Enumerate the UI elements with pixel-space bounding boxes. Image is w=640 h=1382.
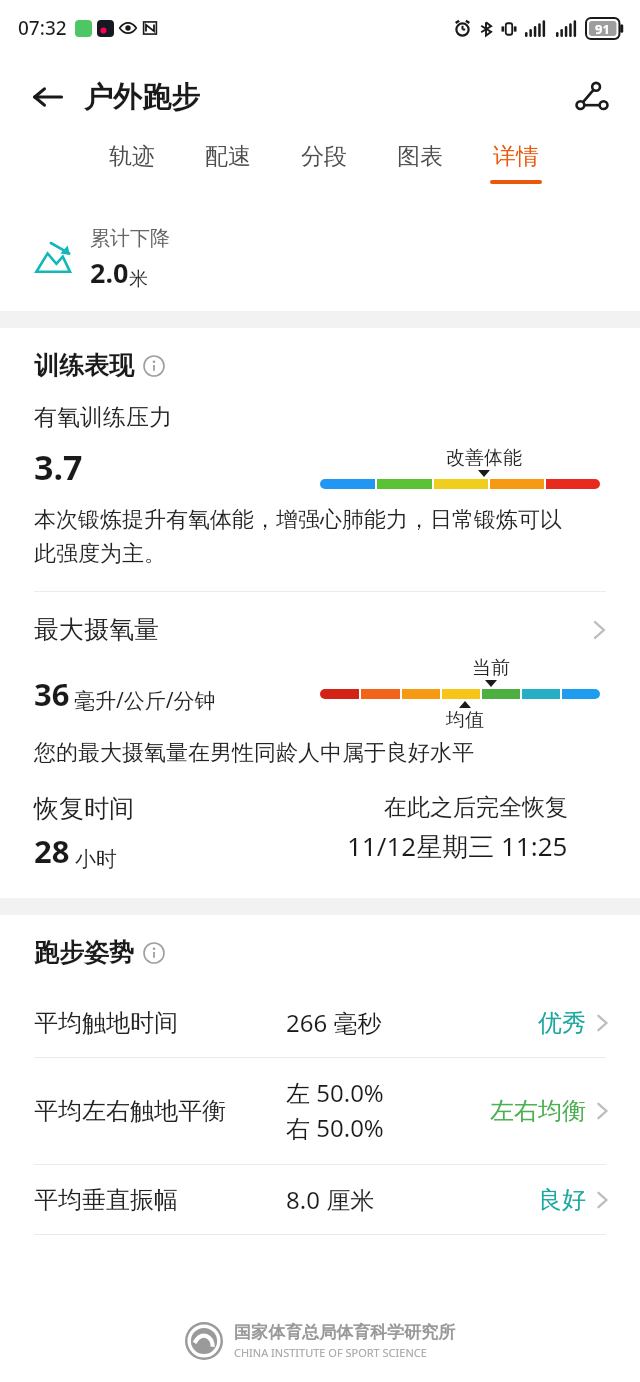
staticText: 国家体育总局体育科学研究所	[234, 1322, 455, 1343]
staticText: 户外跑步	[84, 79, 200, 116]
button[interactable]: 训练表现	[34, 350, 165, 381]
staticText: 07:32	[18, 15, 67, 41]
button[interactable]: 最大摄氧量	[0, 614, 640, 645]
staticText: 跑步姿势	[34, 937, 134, 968]
staticText: 平均触地时间	[34, 1008, 178, 1038]
button[interactable]: 平均触地时间	[0, 988, 640, 1057]
button[interactable]: Share	[568, 73, 616, 121]
staticText: 优秀	[538, 1008, 586, 1038]
staticText: 当前	[472, 656, 510, 680]
staticText: 左 50.0%	[286, 1076, 384, 1109]
staticText: 2.0	[90, 254, 129, 291]
staticText: 累计下降	[90, 226, 170, 251]
button[interactable]: 详情	[488, 138, 544, 188]
staticText: 266 毫秒	[286, 1006, 382, 1039]
staticText: 在此之后完全恢复	[384, 793, 568, 822]
button[interactable]: 配速	[200, 138, 256, 188]
staticText: 平均左右触地平衡	[34, 1096, 226, 1126]
staticText: 您的最大摄氧量在男性同龄人中属于良好水平	[34, 739, 474, 767]
staticText: 分段	[301, 142, 347, 171]
staticText: 米	[129, 267, 148, 291]
button[interactable]: 平均左右触地平衡	[0, 1058, 640, 1164]
staticText: 最大摄氧量	[34, 614, 159, 645]
staticText: 36	[34, 673, 70, 715]
staticText: 28	[34, 830, 70, 872]
staticText: 小时	[75, 846, 117, 872]
staticText: 训练表现	[34, 350, 134, 381]
staticText: 3.7	[34, 444, 83, 490]
button[interactable]: 分段	[296, 138, 352, 188]
staticText: 均值	[446, 708, 484, 732]
staticText: 11/12星期三 11:25	[347, 828, 568, 864]
staticText: 毫升/公斤/分钟	[74, 686, 216, 715]
staticText: 改善体能	[446, 446, 522, 470]
staticText: CHINA INSTITUTE OF SPORT SCIENCE	[234, 1345, 427, 1360]
staticText: 右 50.0%	[286, 1111, 384, 1144]
staticText: 恢复时间	[34, 793, 134, 824]
button[interactable]: 跑步姿势	[34, 937, 165, 968]
staticText: 图表	[397, 142, 443, 171]
staticText: 91	[595, 20, 610, 38]
staticText: 配速	[205, 142, 251, 171]
staticText: 有氧训练压力	[34, 403, 172, 432]
button[interactable]: 轨迹	[104, 138, 160, 188]
button[interactable]: Back	[26, 75, 70, 119]
staticText: 本次锻炼提升有氧体能，增强心肺能力，日常锻炼可以 此强度为主。	[34, 506, 562, 567]
button[interactable]: 图表	[392, 138, 448, 188]
staticText: 详情	[493, 142, 539, 171]
staticText: 平均垂直振幅	[34, 1185, 178, 1215]
staticText: 轨迹	[109, 142, 155, 171]
staticText: 8.0 厘米	[286, 1183, 375, 1216]
staticText: 良好	[538, 1185, 586, 1215]
button[interactable]: 平均垂直振幅	[0, 1165, 640, 1234]
staticText: 左右均衡	[490, 1096, 586, 1126]
